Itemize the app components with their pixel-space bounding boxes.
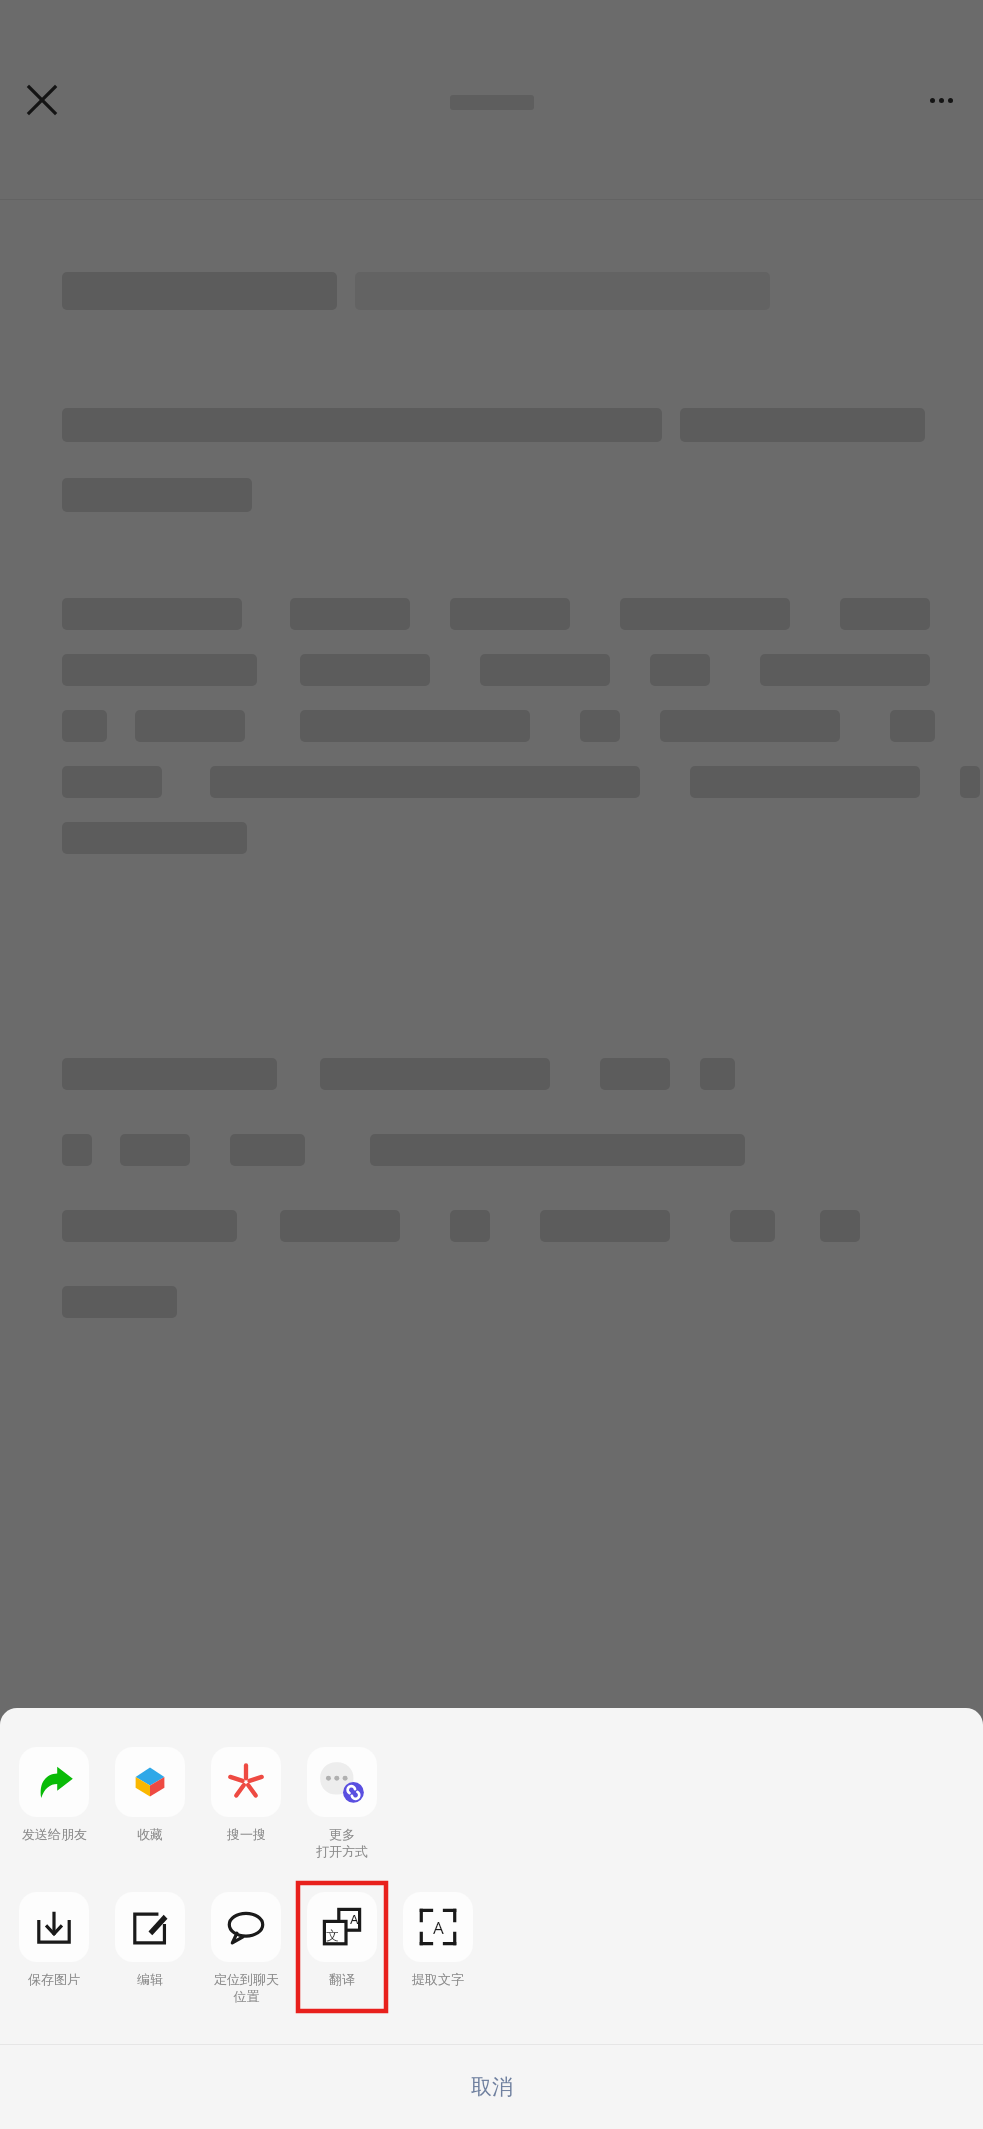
button[interactable]: 编辑: [102, 1886, 198, 1987]
button[interactable]: 定位到聊天 位置: [198, 1886, 294, 2005]
button[interactable]: A: [298, 1886, 386, 2014]
button[interactable]: 搜一搜: [198, 1741, 294, 1842]
staticText: 搜一搜: [227, 1826, 266, 1842]
button[interactable]: A: [390, 1886, 486, 1987]
button[interactable]: 收藏: [102, 1741, 198, 1842]
staticText: 翻译: [329, 1971, 355, 1987]
staticText: A: [350, 1910, 359, 1928]
staticText: A: [433, 1916, 444, 1939]
button[interactable]: 取消: [0, 2045, 983, 2129]
button[interactable]: 发送给朋友: [6, 1741, 102, 1842]
staticText: 取消: [471, 2074, 513, 2100]
staticText: 发送给朋友: [22, 1826, 87, 1842]
button[interactable]: Close: [14, 72, 70, 128]
staticText: 收藏: [137, 1826, 163, 1842]
staticText: 文: [326, 1927, 339, 1943]
staticText: 更多 打开方式: [316, 1826, 368, 1860]
button[interactable]: 保存图片: [6, 1886, 102, 1987]
staticText: 保存图片: [28, 1971, 80, 1987]
staticText: 编辑: [137, 1971, 163, 1987]
button[interactable]: More options: [915, 74, 967, 126]
button[interactable]: 更多 打开方式: [294, 1741, 390, 1860]
staticText: 提取文字: [412, 1971, 464, 1987]
staticText: 定位到聊天 位置: [214, 1971, 279, 2005]
